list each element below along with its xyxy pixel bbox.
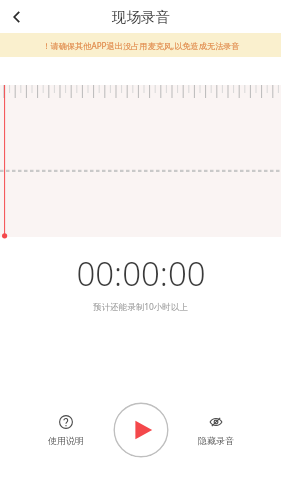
- staticText: 使用说明: [48, 435, 84, 446]
- button[interactable]: Back: [0, 0, 34, 33]
- staticText: 隐藏录音: [198, 435, 234, 446]
- button[interactable]: Start recording: [113, 402, 169, 458]
- staticText: 现场录音: [112, 8, 170, 26]
- button[interactable]: 隐藏录音: [188, 411, 244, 450]
- button[interactable]: 使用说明: [38, 411, 94, 450]
- staticText: 00:00:00: [76, 251, 206, 296]
- staticText: 预计还能录制10小时以上: [93, 301, 188, 313]
- staticText: ！请确保其他APP退出没占用麦克风,以免造成无法录音: [42, 40, 240, 51]
